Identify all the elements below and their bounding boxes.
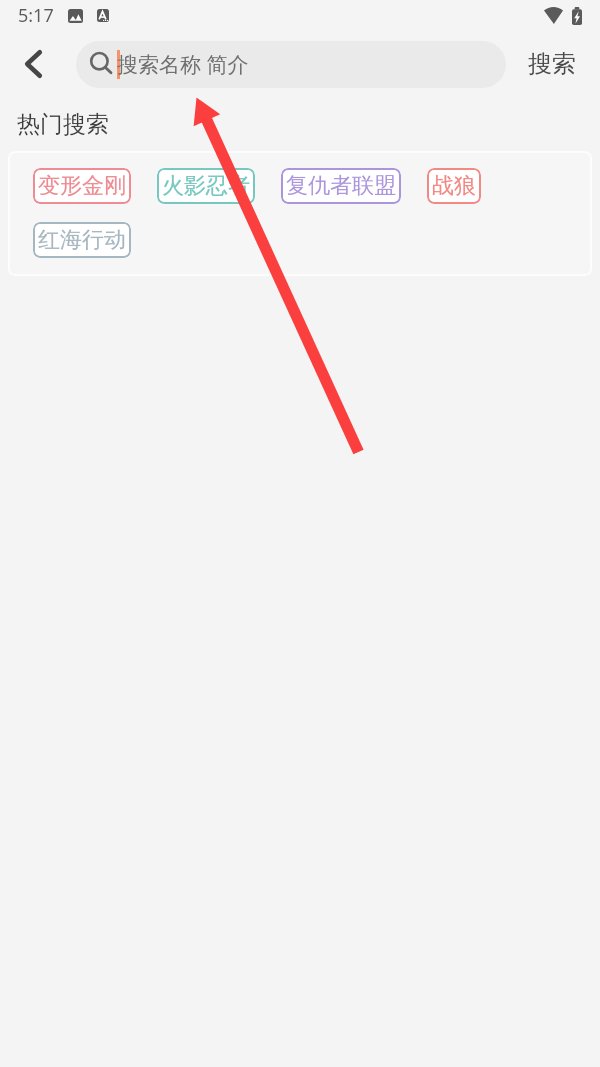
button[interactable]: 复仇者联盟: [281, 168, 401, 204]
staticText: 热门搜索: [17, 110, 109, 139]
staticText: 红海行动: [38, 226, 126, 254]
staticText: 变形金刚: [38, 172, 126, 200]
staticText: 搜索名称 简介: [117, 50, 249, 79]
button[interactable]: 搜索名称 简介: [76, 41, 506, 88]
button[interactable]: 变形金刚: [33, 168, 131, 204]
button[interactable]: 搜索: [528, 33, 576, 95]
staticText: 搜索: [528, 49, 576, 79]
button[interactable]: 红海行动: [33, 222, 131, 258]
button[interactable]: 战狼: [427, 168, 481, 204]
staticText: 复仇者联盟: [286, 172, 396, 200]
button[interactable]: Back: [0, 33, 76, 95]
staticText: 战狼: [432, 172, 476, 200]
staticText: 5:17: [18, 3, 54, 28]
button[interactable]: 火影忍者: [157, 168, 255, 204]
staticText: 火影忍者: [162, 172, 250, 200]
